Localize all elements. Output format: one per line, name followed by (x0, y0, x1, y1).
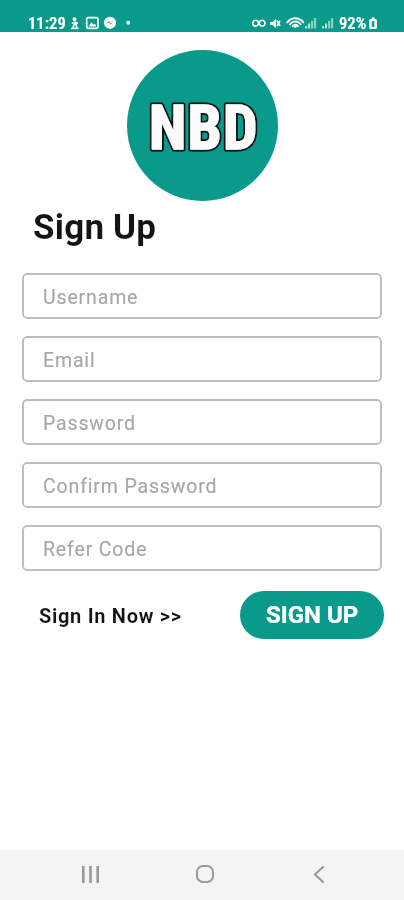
button[interactable]: Refer Code (22, 525, 382, 571)
staticText: NBD (149, 92, 259, 163)
button[interactable]: Home (184, 853, 226, 895)
button[interactable]: Sign In Now >> (20, 594, 201, 637)
button[interactable]: Recents (69, 853, 111, 895)
staticText: NBD (149, 92, 259, 163)
button[interactable]: Password (22, 399, 382, 445)
staticText: NBD (149, 92, 259, 163)
staticText: 11:29 (28, 14, 66, 34)
staticText: SIGN UP (266, 601, 359, 629)
staticText: Username (43, 286, 139, 309)
staticText: Password (43, 412, 136, 435)
staticText: Sign In Now >> (39, 604, 182, 627)
staticText: 92% (339, 14, 367, 34)
staticText: Sign Up (33, 207, 157, 248)
button[interactable]: SIGN UP (240, 591, 384, 639)
staticText: Confirm Password (43, 475, 218, 498)
button[interactable]: Username (22, 273, 382, 319)
button[interactable]: Back (298, 853, 340, 895)
staticText: Refer Code (43, 538, 148, 561)
staticText: Email (43, 349, 96, 372)
button[interactable]: Email (22, 336, 382, 382)
button[interactable]: Confirm Password (22, 462, 382, 508)
